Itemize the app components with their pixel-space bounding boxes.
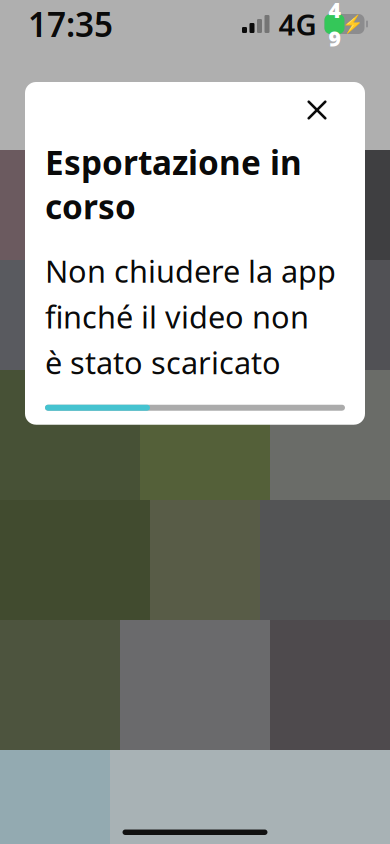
- button[interactable]: Chiudi: [295, 88, 339, 132]
- staticText: ⚡: [341, 14, 363, 34]
- staticText: 17:35: [28, 2, 113, 46]
- staticText: Non chiudere la app finché il video non …: [45, 250, 336, 383]
- staticText: Esportazione in corso: [45, 140, 302, 228]
- staticText: 49: [328, 0, 341, 52]
- staticText: 4G: [278, 4, 316, 43]
